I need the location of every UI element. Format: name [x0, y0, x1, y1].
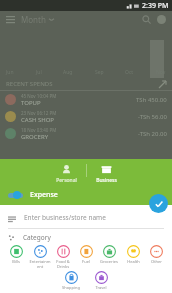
staticText: TSh 450.00 — [136, 96, 167, 104]
staticText: Expense — [30, 190, 58, 200]
button[interactable]: Health — [122, 245, 144, 264]
staticText: Personal — [56, 177, 77, 184]
button[interactable]: Groceries — [98, 245, 120, 264]
staticText: Jul — [36, 69, 42, 76]
staticText: Enter business/store name — [24, 213, 106, 222]
staticText: -TSh 56.00 — [138, 113, 167, 121]
button[interactable]: Profile — [157, 15, 166, 24]
button[interactable]: Save — [149, 194, 168, 213]
staticText: Category — [23, 233, 51, 242]
staticText: Month — [21, 14, 46, 25]
staticText: 23 Nov 06:12 PM — [21, 110, 57, 116]
staticText: Health — [127, 259, 140, 264]
staticText: Food & Drinks — [52, 259, 74, 269]
staticText: Bills — [12, 259, 20, 264]
staticText: Shopping — [62, 285, 80, 290]
button[interactable]: Entertainment — [29, 245, 51, 269]
button[interactable] — [6, 189, 25, 201]
staticText: RECENT SPENDS — [6, 80, 53, 88]
staticText: Travel — [95, 285, 107, 290]
staticText: Jun — [6, 69, 14, 76]
staticText: Oct — [125, 69, 134, 76]
button[interactable]: Personal — [54, 164, 79, 184]
button[interactable]: Business — [94, 164, 119, 184]
button[interactable]: Menu — [6, 15, 15, 24]
button[interactable]: Enter business/store name — [0, 210, 172, 225]
staticText: 45 Nov 10:04 PM — [21, 93, 57, 99]
button[interactable]: 45 Nov 10:04 PM — [0, 91, 172, 108]
button[interactable]: Fuel — [75, 245, 97, 264]
button[interactable]: Food & Drinks — [52, 245, 74, 269]
staticText: Aug — [63, 69, 73, 76]
staticText: Groceries — [100, 259, 118, 264]
button[interactable]: 23 Nov 06:12 PM — [0, 108, 172, 125]
staticText: Entertainment — [29, 259, 51, 269]
staticText: 18 Nov 03:40 PM — [21, 127, 57, 133]
staticText: CASH SHOP — [21, 116, 54, 124]
button[interactable]: 18 Nov 03:40 PM — [0, 125, 172, 142]
staticText: GROCERY — [21, 133, 49, 141]
button[interactable]: Other — [145, 245, 167, 264]
staticText: Business — [96, 177, 117, 184]
staticText: -TSh 20.00 — [138, 130, 167, 138]
staticText: Other — [151, 259, 162, 264]
button[interactable]: Search — [142, 15, 151, 24]
staticText: TOPUP — [21, 99, 41, 107]
staticText: Sep — [95, 69, 104, 76]
staticText: Nov — [156, 69, 166, 76]
button[interactable]: Shopping — [60, 271, 82, 290]
button[interactable]: Travel — [90, 271, 112, 290]
button[interactable]: Bills — [5, 245, 27, 264]
staticText: Fuel — [82, 259, 90, 264]
staticText: 2:39 PM — [142, 1, 169, 11]
